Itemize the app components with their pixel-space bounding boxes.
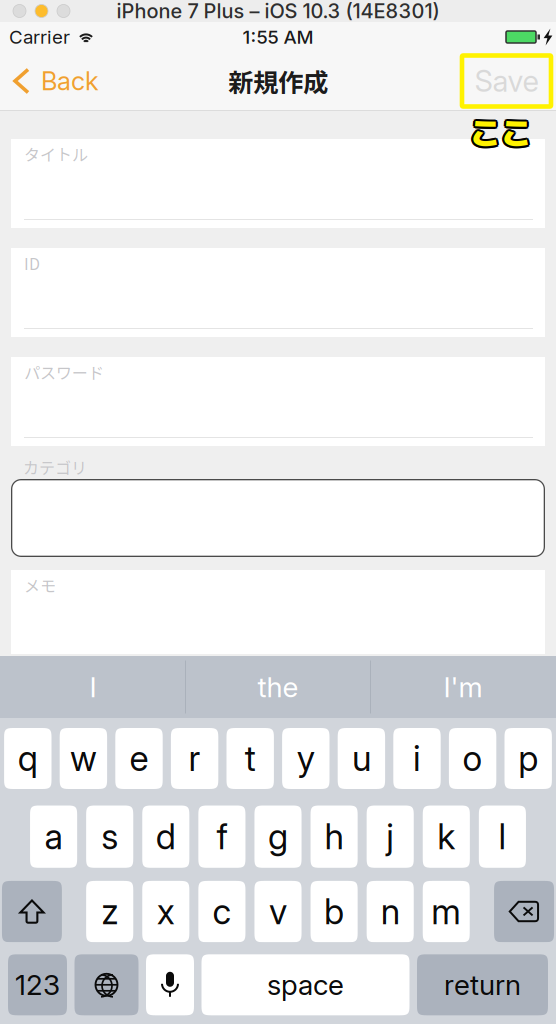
button[interactable]: b (311, 881, 358, 942)
staticText: I (89, 670, 96, 704)
button[interactable]: m (423, 881, 470, 942)
staticText: v (269, 891, 287, 932)
staticText: o (463, 737, 483, 779)
button[interactable]: j (367, 805, 414, 868)
button[interactable]: x (142, 881, 189, 942)
staticText: i (413, 737, 421, 779)
staticText: ここ (472, 107, 534, 152)
staticText: iPhone 7 Plus – iOS 10.3 (14E8301) (116, 0, 439, 23)
staticText: d (156, 816, 176, 858)
button[interactable]: ID (11, 248, 545, 337)
staticText: n (381, 891, 400, 932)
staticText: z (101, 891, 118, 932)
staticText: ここ (472, 110, 534, 155)
button[interactable]: o (449, 728, 496, 789)
staticText: u (352, 737, 371, 779)
staticText: the (257, 670, 298, 704)
staticText: j (386, 816, 394, 858)
button[interactable]: Save (462, 55, 551, 106)
button[interactable]: Shift (2, 881, 62, 942)
button[interactable]: the (186, 656, 370, 718)
button[interactable]: g (254, 805, 301, 868)
staticText: q (18, 737, 38, 779)
staticText: ここ (470, 111, 532, 155)
button[interactable]: h (310, 805, 358, 868)
staticText: w (70, 737, 97, 779)
button[interactable]: Next keyboard (74, 954, 138, 1015)
button[interactable]: I'm (371, 656, 555, 718)
button[interactable]: k (423, 805, 470, 868)
staticText: メモ (24, 573, 56, 597)
staticText: 123 (15, 968, 60, 1002)
button[interactable]: Delete (494, 881, 554, 942)
button[interactable]: タイトル (11, 139, 545, 228)
button[interactable]: 123 (8, 954, 67, 1015)
button[interactable]: s (86, 805, 133, 868)
staticText: r (189, 737, 201, 779)
button[interactable]: Dictation (146, 954, 194, 1015)
button[interactable]: z (86, 881, 133, 942)
staticText: m (431, 891, 461, 932)
staticText: タイトル (24, 142, 88, 166)
button[interactable]: n (367, 881, 414, 942)
staticText: k (437, 816, 455, 858)
button[interactable]: e (115, 728, 163, 789)
staticText: ここ (472, 109, 534, 153)
staticText: 1:55 AM (242, 26, 313, 48)
button[interactable]: p (504, 728, 552, 789)
staticText: c (212, 891, 231, 932)
button[interactable]: a (30, 805, 77, 868)
staticText: ここ (470, 107, 532, 151)
button[interactable]: r (171, 728, 218, 789)
button[interactable]: パスワード (11, 357, 545, 446)
staticText: ここ (468, 107, 530, 152)
staticText: ここ (468, 110, 530, 155)
staticText: space (267, 968, 344, 1002)
staticText: 新規作成 (228, 63, 328, 99)
button[interactable]: return (417, 954, 548, 1015)
staticText: p (518, 737, 538, 779)
staticText: x (157, 891, 175, 932)
staticText: Carrier (9, 26, 70, 48)
staticText: return (444, 968, 521, 1002)
staticText: Save (474, 63, 538, 99)
staticText: ID (24, 251, 40, 275)
staticText: t (245, 737, 256, 779)
button[interactable]: l (479, 805, 526, 868)
staticText: I'm (443, 670, 482, 704)
staticText: e (129, 737, 148, 779)
staticText: l (498, 816, 506, 858)
button[interactable]: f (198, 805, 245, 868)
staticText: g (268, 816, 288, 858)
button[interactable]: Back (0, 52, 111, 110)
button[interactable]: d (142, 805, 189, 868)
button[interactable]: i (393, 728, 441, 789)
button[interactable]: I (1, 656, 185, 718)
staticText: s (101, 816, 118, 858)
button[interactable]: u (338, 728, 385, 789)
button[interactable] (11, 479, 545, 557)
staticText: f (216, 816, 227, 858)
button[interactable]: c (198, 881, 245, 942)
staticText: ここ (468, 109, 530, 153)
button[interactable]: w (60, 728, 107, 789)
staticText: y (297, 737, 315, 779)
button[interactable]: q (4, 728, 51, 789)
staticText: ここ (470, 109, 532, 153)
staticText: b (324, 891, 344, 932)
button[interactable]: t (226, 728, 274, 789)
staticText: Back (41, 66, 99, 96)
staticText: カテゴリ (23, 455, 87, 479)
staticText: h (325, 816, 344, 858)
staticText: パスワード (24, 360, 104, 384)
button[interactable]: v (254, 881, 301, 942)
button[interactable]: y (282, 728, 329, 789)
button[interactable]: space (201, 954, 409, 1015)
staticText: a (45, 816, 63, 858)
